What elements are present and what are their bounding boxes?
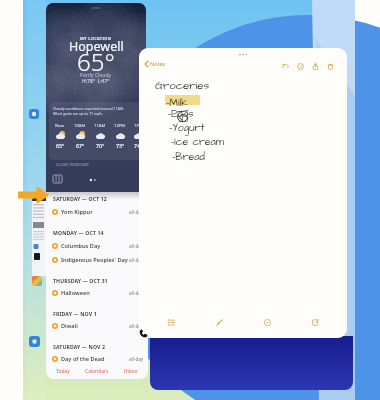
button[interactable]: Share <box>308 59 323 73</box>
staticText: Wind gusts are up to 11 mph. <box>53 111 103 116</box>
button[interactable]: Indigenous Peoples' Day <box>46 254 148 266</box>
staticText: 1PM <box>134 123 143 129</box>
other: Phone <box>139 329 148 338</box>
button[interactable]: Inbox <box>114 365 148 377</box>
staticText: Columbus Day <box>61 242 101 250</box>
staticText: THURSDAY — OCT 31 <box>53 277 108 284</box>
staticText: 65° <box>56 142 65 149</box>
staticText: Yom Kippur <box>61 208 93 216</box>
staticText: MONDAY — OCT 14 <box>53 229 104 236</box>
staticText: Inbox <box>124 368 138 375</box>
button[interactable]: App icon <box>29 336 40 347</box>
staticText: all-day <box>129 323 144 329</box>
button[interactable]: Diwali <box>46 320 148 332</box>
staticText: all-day <box>129 243 144 249</box>
staticText: Calendars <box>85 368 109 375</box>
staticText: -Yogurt <box>169 121 205 136</box>
staticText: 74° <box>134 142 143 149</box>
button[interactable]: App icon <box>29 109 39 119</box>
staticText: Groceries <box>155 78 210 94</box>
staticText: SATURDAY — NOV 2 <box>53 343 106 350</box>
staticText: 10AM <box>74 123 86 129</box>
staticText: all-day <box>129 290 144 296</box>
staticText: Today <box>56 368 70 375</box>
staticText: 73° <box>116 142 125 149</box>
staticText: SATURDAY — OCT 12 <box>53 195 107 202</box>
staticText: Notes <box>150 60 166 67</box>
staticText: -Milk <box>166 96 188 111</box>
button[interactable]: Stacked window <box>32 198 46 276</box>
button[interactable]: Checklist <box>147 315 195 329</box>
button[interactable]: Day of the Dead <box>46 353 148 365</box>
button[interactable]: More options <box>323 59 338 73</box>
button[interactable]: Calendars <box>80 365 114 377</box>
button[interactable]: Columbus Day <box>46 240 148 252</box>
staticText: 65° <box>77 45 115 78</box>
button[interactable]: Halloween <box>46 287 148 299</box>
button[interactable]: Map <box>53 175 62 183</box>
button[interactable]: Markup <box>195 315 243 329</box>
staticText: -Ice cream <box>171 135 225 150</box>
button[interactable]: Photos <box>32 276 42 286</box>
staticText: 67° <box>76 142 85 149</box>
button[interactable]: Today <box>46 365 80 377</box>
staticText: 70° <box>96 142 105 149</box>
button[interactable]: Undo <box>278 59 293 73</box>
staticText: 10-DAY FORECAST <box>55 162 90 167</box>
staticText: all-day <box>129 356 144 362</box>
staticText: Partly Cloudy <box>80 72 112 79</box>
staticText: 11AM <box>94 123 106 129</box>
button[interactable]: Notes <box>145 60 166 67</box>
button[interactable]: Mark as done <box>293 59 308 73</box>
staticText: all-day <box>129 209 144 215</box>
staticText: Diwali <box>61 322 78 330</box>
other: Pointer <box>18 185 49 205</box>
staticText: 12PM <box>114 123 126 129</box>
staticText: -Eggs <box>168 107 194 122</box>
staticText: Cloudy conditions expected around 11AM. <box>53 106 125 111</box>
staticText: -Bread <box>172 150 205 165</box>
staticText: Day of the Dead <box>61 355 105 363</box>
staticText: MY LOCATION <box>80 36 112 41</box>
button[interactable]: Yom Kippur <box>46 206 148 218</box>
staticText: FRIDAY — NOV 1 <box>53 310 97 317</box>
staticText: Hopewell <box>69 38 124 55</box>
staticText: Halloween <box>61 289 90 297</box>
staticText: Indigenous Peoples' Day <box>61 256 128 264</box>
button[interactable]: Insert media <box>243 315 291 329</box>
staticText: Now <box>55 123 65 129</box>
staticText: H:78° L:47° <box>82 78 110 85</box>
staticText: all-day <box>129 257 144 263</box>
button[interactable]: New note <box>291 315 339 329</box>
